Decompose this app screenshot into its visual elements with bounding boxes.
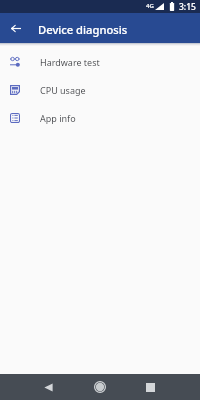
staticText: 3:15: [179, 1, 196, 13]
button[interactable]: Home: [87, 374, 113, 400]
staticText: Device diagnosis: [38, 22, 128, 37]
button[interactable]: CPU usage: [0, 76, 200, 104]
button[interactable]: App info: [0, 104, 200, 132]
staticText: Hardware test: [40, 56, 100, 68]
staticText: 4G: [146, 2, 154, 10]
button[interactable]: Recent apps: [137, 374, 163, 400]
button[interactable]: Hardware test: [0, 48, 200, 76]
staticText: App info: [40, 112, 76, 124]
staticText: CPU usage: [40, 84, 86, 96]
button[interactable]: Back: [35, 374, 61, 400]
button[interactable]: Navigate up: [2, 14, 30, 42]
